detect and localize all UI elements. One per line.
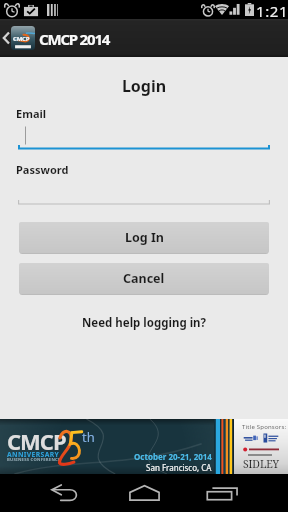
staticText: ANNIVERSARY (7, 450, 60, 459)
staticText: Log In (125, 229, 164, 246)
staticText: CMCP 2014 (39, 29, 110, 49)
staticText: October 20-21, 2014 (134, 451, 212, 462)
button[interactable]: Need help logging in? (0, 315, 288, 331)
staticText: Title Sponsors: (242, 423, 287, 431)
staticText: th (82, 428, 95, 446)
staticText: 1:21 (256, 1, 288, 20)
staticText: CMCP (13, 35, 30, 43)
button[interactable]: Recent apps (190, 474, 254, 512)
staticText: CMCP (7, 426, 66, 456)
staticText: SIDLEY (243, 457, 280, 471)
button[interactable]: Home (112, 474, 176, 512)
staticText: Login (0, 75, 288, 97)
staticText: BUSINESS CONFERENCE (7, 457, 61, 463)
button[interactable]: Log In (19, 222, 269, 253)
button[interactable]: Email field (18, 122, 270, 150)
button[interactable]: Cancel (19, 263, 269, 294)
button[interactable]: Back (32, 474, 96, 512)
staticText: Email (16, 106, 47, 121)
staticText: Cancel (123, 270, 165, 287)
button[interactable]: Conference advertisement (0, 419, 288, 474)
staticText: San Francisco, CA (146, 462, 212, 473)
button[interactable]: Password field (18, 180, 270, 205)
staticText: Password (16, 162, 69, 177)
button[interactable]: Navigate up (0, 19, 11, 57)
